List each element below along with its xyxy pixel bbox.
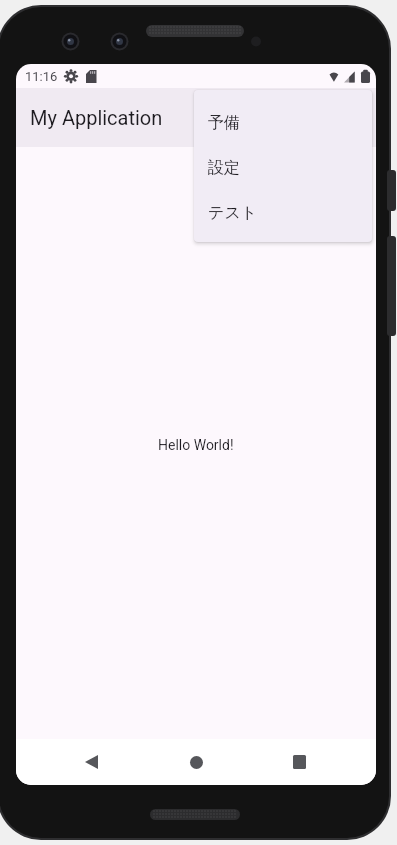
staticText: 設定 (208, 158, 240, 178)
staticText: テスト (208, 203, 258, 223)
staticText: My Application (30, 106, 163, 129)
button[interactable]: 予備 (194, 100, 372, 145)
button[interactable] (67, 739, 116, 785)
button[interactable]: 設定 (194, 145, 372, 190)
button[interactable] (275, 739, 324, 785)
button[interactable] (171, 739, 221, 785)
button[interactable]: My Application (16, 88, 376, 147)
staticText: Hello World! (158, 437, 234, 453)
staticText: 予備 (208, 113, 240, 133)
staticText: 11:16 (25, 69, 58, 84)
button[interactable]: テスト (194, 190, 372, 235)
